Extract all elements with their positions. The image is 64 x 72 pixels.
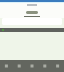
- button[interactable]: Tab: [38, 64, 51, 67]
- button[interactable]: Tab: [13, 64, 26, 67]
- button[interactable]: Tab: [26, 64, 38, 67]
- button[interactable]: Tab: [51, 64, 64, 67]
- button[interactable]: Action: [26, 11, 38, 14]
- button[interactable]: Tab: [0, 64, 13, 67]
